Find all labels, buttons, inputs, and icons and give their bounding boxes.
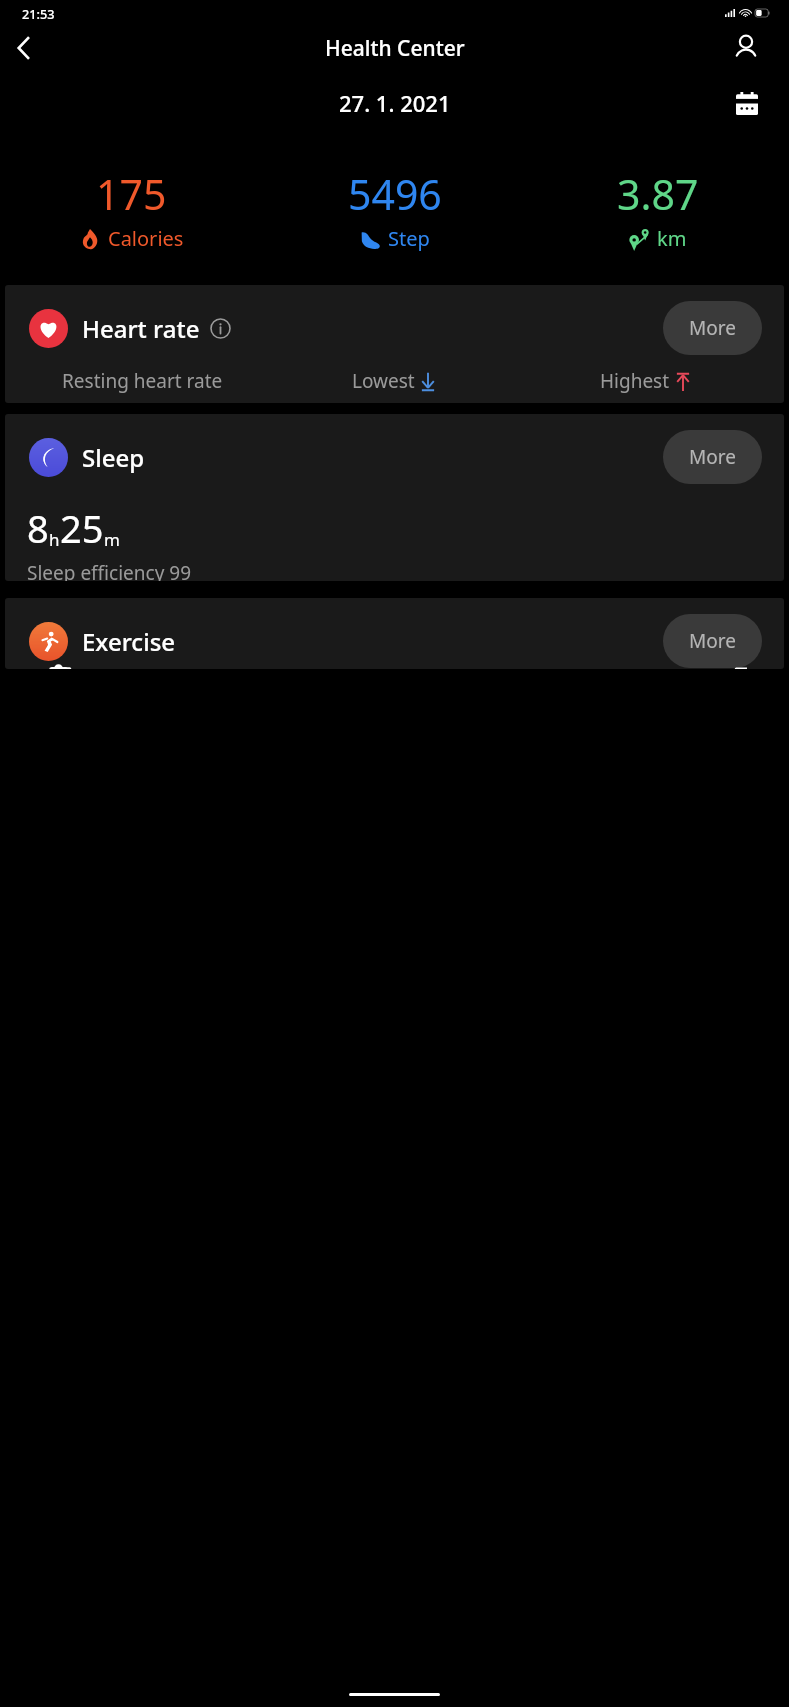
button[interactable]: More (663, 430, 762, 484)
staticText: 8 (27, 502, 49, 554)
staticText: Resting heart rate (62, 368, 223, 394)
staticText: m (104, 528, 120, 551)
staticText: Lowest (352, 368, 415, 394)
button[interactable]: Heart rate (5, 285, 784, 403)
button[interactable]: More (663, 301, 762, 355)
button[interactable]: More (663, 614, 762, 668)
staticText: 25 (60, 502, 104, 554)
staticText: Sleep (82, 441, 145, 474)
staticText: More (689, 444, 736, 470)
staticText: km (657, 225, 687, 252)
button[interactable]: 5496 (263, 166, 526, 252)
staticText: h (49, 528, 60, 551)
button[interactable]: Profile (725, 27, 767, 69)
button[interactable]: 3.87 (526, 166, 789, 252)
staticText: Sleep efficiency 99 (27, 560, 192, 581)
button[interactable]: Calendar (727, 84, 767, 122)
staticText: 175 (96, 166, 167, 222)
staticText: Exercise (82, 625, 176, 658)
button[interactable]: 175 (0, 166, 263, 252)
button[interactable]: Back (0, 26, 46, 70)
button[interactable]: Sleep (5, 414, 784, 581)
staticText: More (689, 628, 736, 654)
staticText: 21:53 (22, 5, 55, 22)
staticText: More (689, 315, 736, 341)
staticText: 27. 1. 2021 (339, 88, 451, 118)
staticText: Highest (600, 368, 670, 394)
staticText: Health Center (325, 34, 465, 63)
staticText: Step (388, 225, 430, 252)
staticText: 3.87 (617, 166, 699, 222)
staticText: Heart rate (82, 312, 200, 345)
staticText: Calories (108, 225, 184, 252)
staticText: 5496 (348, 166, 442, 222)
